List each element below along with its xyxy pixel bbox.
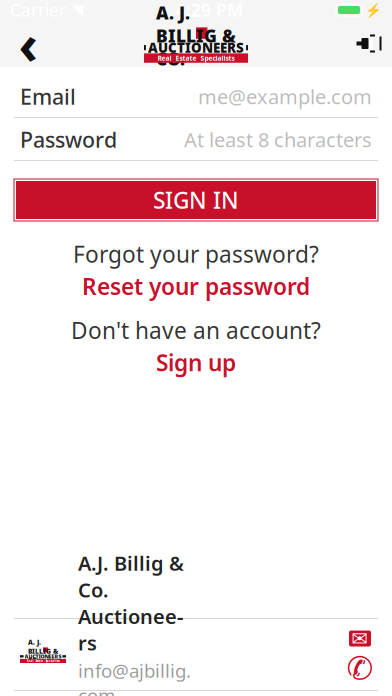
button[interactable]: Call A.J. Billig & Co. (348, 656, 372, 680)
staticText: A. J. BILLIG & CO. (156, 1, 236, 70)
button[interactable]: Email A.J. Billig & Co. (348, 628, 372, 648)
button[interactable]: Back (6, 20, 50, 66)
button[interactable]: Sign in (342, 20, 386, 66)
staticText: Real Estate Specialists (157, 54, 234, 62)
staticText: A.J. Billig & Co. Auctioneers (78, 550, 184, 656)
staticText: ✆ (346, 650, 373, 687)
staticText: Email (20, 82, 76, 111)
staticText: SIGN IN (153, 185, 239, 215)
button[interactable]: Sign up (150, 345, 242, 377)
staticText: Real Estate Specialists (26, 659, 59, 663)
staticText: Reset your password (82, 271, 310, 301)
staticText: 4:29 PM (176, 0, 243, 21)
staticText: Forgot your password? (73, 239, 319, 269)
staticText: ✉ (351, 627, 368, 650)
button[interactable]: SIGN IN (14, 179, 378, 221)
staticText: A. J. BILLIG & CO. (28, 638, 58, 664)
staticText: info@ajbillig.com (78, 658, 191, 696)
button[interactable]: Reset your password (76, 269, 316, 301)
staticText: Password (20, 125, 117, 154)
staticText: At least 8 characters (184, 126, 372, 153)
staticText: Don't have an account? (71, 315, 321, 345)
staticText: AUCTIONEERS (148, 39, 244, 56)
staticText: Sign up (156, 347, 236, 377)
staticText: Carrier (10, 0, 66, 21)
staticText: ◥ (72, 2, 83, 18)
staticText: AUCTIONEERS (24, 653, 61, 660)
staticText: ‹ (18, 8, 37, 79)
staticText: me@example.com (198, 83, 372, 110)
staticText: ⚡ (362, 1, 382, 19)
